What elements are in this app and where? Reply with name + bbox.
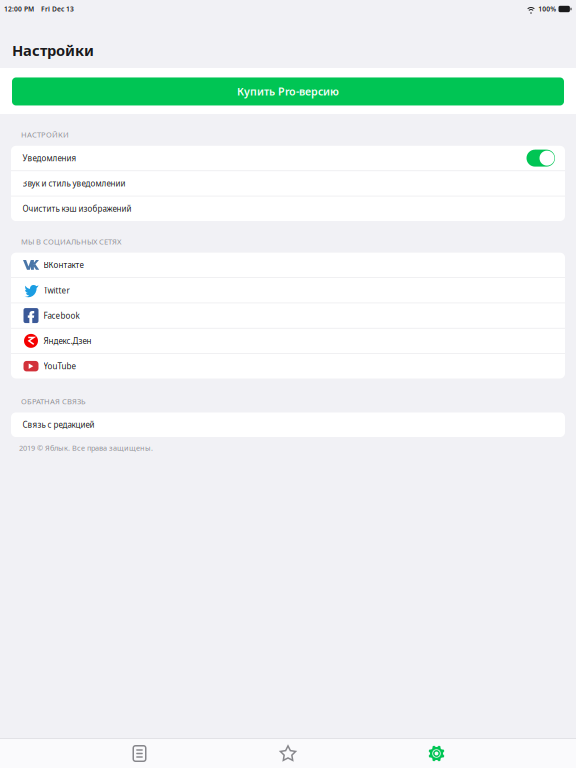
button[interactable]: Настройки bbox=[362, 739, 511, 768]
staticText: ВКонтакте bbox=[44, 259, 84, 270]
button[interactable]: Яндекс.Дзен bbox=[11, 329, 565, 353]
button[interactable]: Звук и стиль уведомлений bbox=[11, 171, 565, 196]
button[interactable]: Facebook bbox=[11, 303, 565, 328]
button[interactable]: ВКонтакте bbox=[11, 253, 565, 277]
staticText: 12:00 PM bbox=[4, 5, 34, 13]
staticText: НАСТРОЙКИ bbox=[21, 129, 69, 140]
button[interactable]: YouTube bbox=[11, 354, 565, 378]
staticText: 2019 © Яблык. Все права защищены. bbox=[19, 443, 153, 453]
staticText: Очистить кэш изображений bbox=[23, 203, 132, 214]
staticText: YouTube bbox=[44, 361, 77, 372]
staticText: Настройки bbox=[12, 40, 94, 60]
staticText: Twitter bbox=[44, 285, 70, 296]
staticText: Яндекс.Дзен bbox=[44, 335, 92, 346]
button[interactable]: Купить Pro-версию bbox=[12, 77, 564, 105]
staticText: Уведомления bbox=[23, 153, 77, 164]
staticText: Facebook bbox=[44, 310, 80, 321]
staticText: Звук и стиль уведомлений bbox=[23, 178, 126, 189]
staticText: Купить Pro-версию bbox=[237, 84, 339, 99]
staticText: 100% bbox=[538, 5, 556, 13]
button[interactable]: Новости bbox=[65, 739, 214, 768]
staticText: Связь с редакцией bbox=[23, 419, 95, 430]
button[interactable]: Twitter bbox=[11, 278, 565, 303]
button[interactable]: Очистить кэш изображений bbox=[11, 196, 565, 221]
button[interactable]: Избранное bbox=[214, 739, 362, 768]
staticText: Fri Dec 13 bbox=[41, 5, 74, 13]
staticText: ОБРАТНАЯ СВЯЗЬ bbox=[21, 396, 86, 406]
button[interactable]: Связь с редакцией bbox=[11, 412, 565, 437]
button[interactable]: Уведомления bbox=[11, 146, 565, 170]
staticText: МЫ В СОЦИАЛЬНЫХ СЕТЯХ bbox=[21, 236, 121, 247]
